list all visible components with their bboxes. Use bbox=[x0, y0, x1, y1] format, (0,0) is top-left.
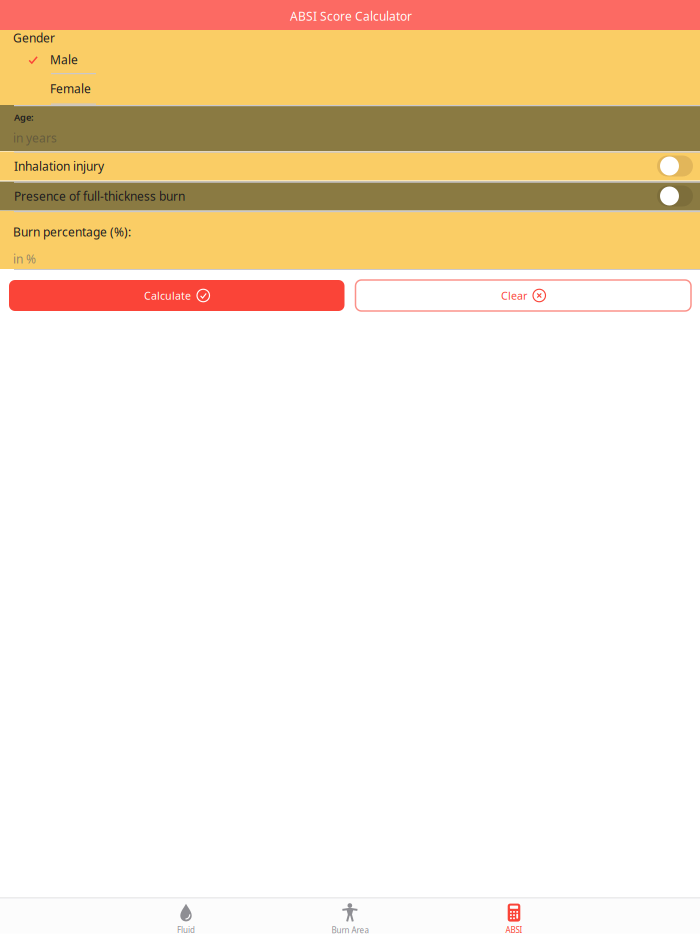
button[interactable]: Male bbox=[0, 45, 700, 74]
staticText: Male bbox=[50, 51, 78, 67]
button[interactable]: Clear bbox=[355, 280, 691, 311]
button[interactable]: Burn Area bbox=[268, 899, 432, 934]
staticText: Age: bbox=[14, 111, 34, 123]
staticText: Burn Area bbox=[331, 925, 368, 934]
staticText: Clear bbox=[501, 288, 527, 303]
staticText: Calculate bbox=[144, 288, 191, 303]
staticText: ABSI bbox=[505, 925, 522, 934]
staticText: Inhalation injury bbox=[14, 158, 104, 174]
staticText: in years bbox=[13, 130, 57, 146]
staticText: Fluid bbox=[177, 925, 195, 934]
button[interactable]: ABSI bbox=[432, 899, 596, 934]
button[interactable]: Presence of full-thickness burn bbox=[657, 182, 700, 209]
staticText: Presence of full-thickness burn bbox=[14, 188, 185, 204]
staticText: in % bbox=[13, 251, 36, 267]
button[interactable]: Inhalation injury bbox=[657, 152, 700, 179]
button[interactable]: Fluid bbox=[104, 899, 268, 934]
staticText: Female bbox=[50, 80, 91, 96]
button[interactable]: Female bbox=[0, 74, 700, 103]
staticText: ABSI Score Calculator bbox=[290, 8, 412, 24]
button[interactable]: Calculate bbox=[9, 280, 344, 311]
staticText: Gender bbox=[13, 30, 55, 46]
staticText: Burn percentage (%): bbox=[13, 224, 131, 240]
